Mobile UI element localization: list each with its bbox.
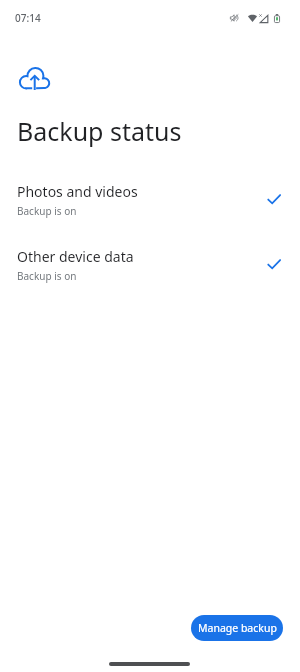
button[interactable]: Photos and videos (0, 179, 300, 225)
button[interactable]: Other device data (0, 244, 300, 290)
staticText: Backup status (17, 114, 182, 148)
other: Battery (274, 14, 280, 23)
other: Wi-Fi (248, 14, 257, 22)
button[interactable]: Manage backup (191, 615, 283, 641)
staticText: Photos and videos (17, 182, 138, 201)
staticText: Manage backup (198, 621, 277, 635)
other: Mobile signal (260, 15, 268, 23)
staticText: 07:14 (15, 11, 41, 25)
other: Ringer silent (230, 14, 239, 22)
staticText: Backup is on (17, 269, 77, 283)
staticText: Backup is on (17, 204, 77, 218)
staticText: Other device data (17, 247, 134, 266)
